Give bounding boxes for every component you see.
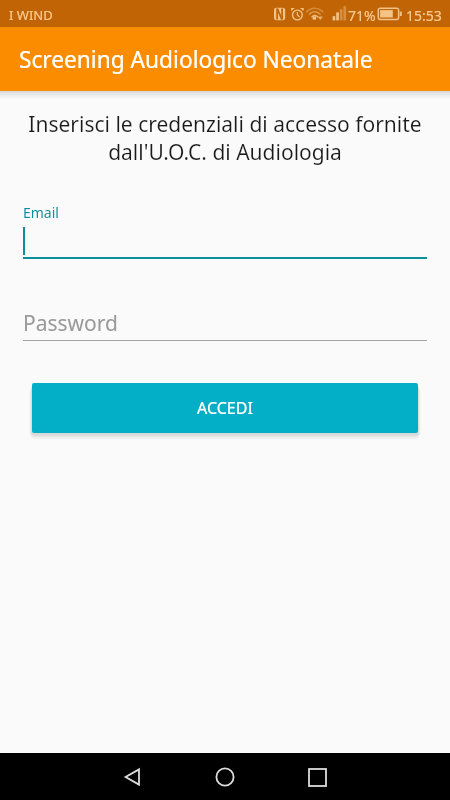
staticText: Password: [23, 309, 118, 338]
button[interactable]: Email: [0, 196, 450, 264]
button[interactable]: Recent apps: [295, 755, 339, 799]
staticText: I WIND: [9, 6, 53, 24]
staticText: Screening Audiologico Neonatale: [19, 44, 373, 75]
button[interactable]: ACCEDI: [32, 383, 418, 433]
button[interactable]: Password: [0, 306, 450, 346]
staticText: ACCEDI: [197, 397, 253, 419]
staticText: 71%: [348, 6, 376, 25]
staticText: Inserisci le credenziali di accesso forn…: [24, 110, 426, 166]
button[interactable]: Back: [111, 755, 155, 799]
staticText: Email: [23, 203, 59, 222]
staticText: 15:53: [406, 6, 442, 25]
button[interactable]: Home: [203, 755, 247, 799]
